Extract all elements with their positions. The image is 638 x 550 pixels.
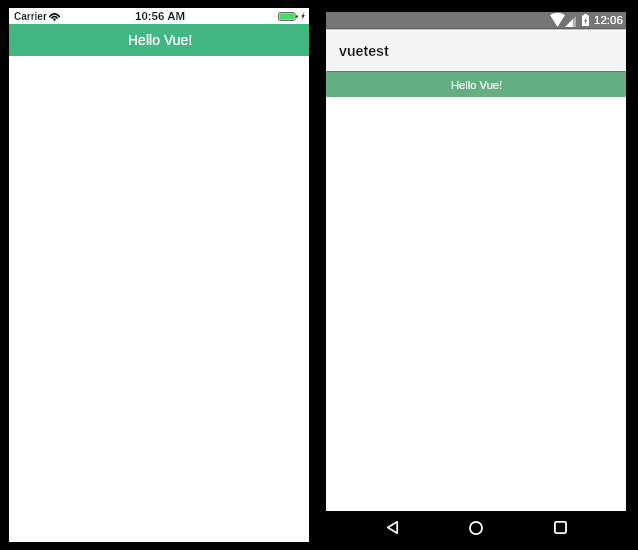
staticText: 10:56 AM [135,10,186,23]
button[interactable]: Hello Vue! [9,24,309,56]
staticText: Hello Vue! [451,79,503,92]
button[interactable]: Home [458,511,494,542]
staticText: 12:06 [594,14,623,27]
button[interactable]: Back [374,511,410,542]
staticText: Hello Vue! [128,33,193,48]
button[interactable]: Hello Vue! [326,71,626,97]
button[interactable]: Recent apps [542,511,578,542]
staticText: Carrier [14,11,47,22]
staticText: vuetest [339,43,389,59]
